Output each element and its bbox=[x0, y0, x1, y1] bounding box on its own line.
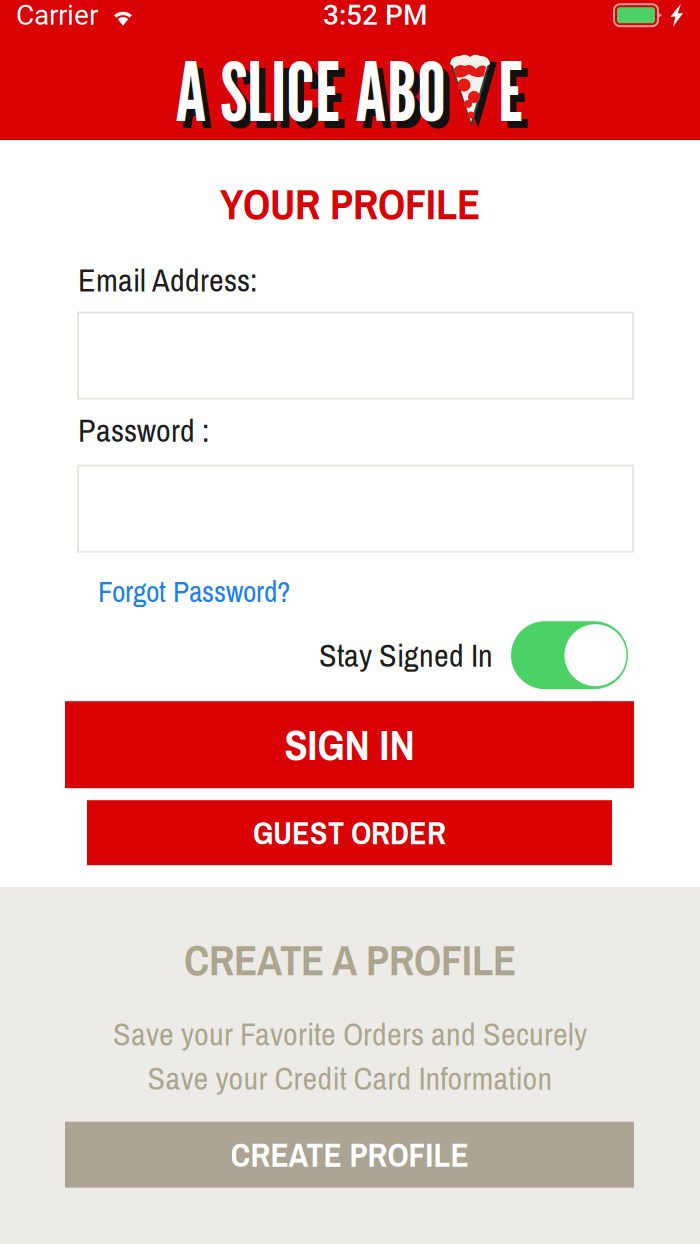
button[interactable]: CREATE PROFILE bbox=[65, 1122, 634, 1188]
staticText: Carrier bbox=[16, 0, 98, 32]
staticText: 3:52 PM bbox=[323, 0, 427, 32]
staticText: Save your Favorite Orders and Securely bbox=[113, 1012, 587, 1056]
staticText: Email Address: bbox=[78, 258, 257, 302]
staticText: Save your Credit Card Information bbox=[147, 1057, 552, 1100]
staticText: GUEST ORDER bbox=[253, 811, 446, 854]
staticText: YOUR PROFILE bbox=[220, 175, 480, 232]
button[interactable]: SIGN IN bbox=[65, 701, 634, 788]
staticText: CREATE A PROFILE bbox=[184, 931, 516, 988]
button[interactable]: Forgot Password? bbox=[78, 572, 290, 611]
staticText: SIGN IN bbox=[284, 716, 414, 773]
staticText: Stay Signed In bbox=[319, 634, 493, 677]
staticText: CREATE PROFILE bbox=[230, 1132, 468, 1177]
staticText: E bbox=[504, 49, 531, 147]
staticText: Forgot Password? bbox=[98, 572, 290, 611]
staticText: E bbox=[498, 42, 525, 140]
button[interactable]: GUEST ORDER bbox=[87, 800, 612, 865]
staticText: A SLICE ABO bbox=[181, 49, 452, 147]
button[interactable]: Stay Signed In bbox=[511, 621, 628, 689]
staticText: A SLICE ABO bbox=[175, 42, 446, 140]
staticText: Password : bbox=[78, 409, 209, 452]
